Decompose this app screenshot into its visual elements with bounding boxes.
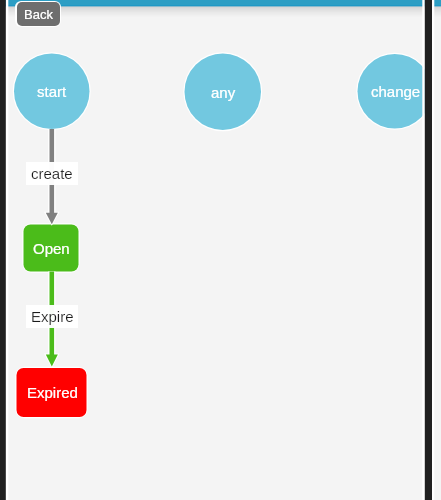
button[interactable]: start xyxy=(14,53,90,129)
button[interactable]: Expired xyxy=(17,368,87,417)
staticText: change xyxy=(371,83,421,100)
button[interactable]: Open xyxy=(24,225,79,272)
staticText: Open xyxy=(33,240,70,257)
staticText: create xyxy=(31,165,73,182)
button[interactable]: any xyxy=(185,54,262,131)
staticText: any xyxy=(211,84,236,101)
staticText: Back xyxy=(24,7,53,22)
button[interactable]: change xyxy=(358,54,433,129)
button[interactable]: Back xyxy=(15,1,61,27)
staticText: Expire xyxy=(31,308,74,325)
staticText: start xyxy=(37,83,67,100)
staticText: Expired xyxy=(27,384,78,401)
